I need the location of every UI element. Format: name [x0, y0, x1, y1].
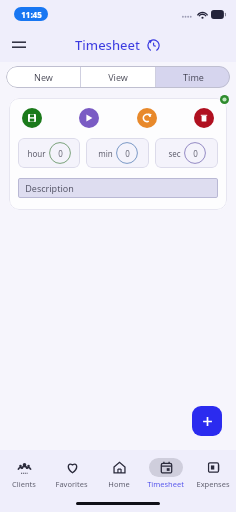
button[interactable]: Expenses	[189, 451, 236, 495]
staticText: Favorites	[55, 479, 88, 489]
button[interactable]: Description	[18, 178, 218, 198]
staticText: Description	[25, 182, 74, 194]
staticText: 0	[193, 148, 198, 159]
staticText: View	[108, 71, 128, 83]
staticText: Home	[108, 479, 130, 489]
button[interactable]: History	[145, 37, 161, 53]
staticText: Expenses	[196, 479, 230, 489]
staticText: hour	[27, 148, 46, 159]
staticText: Timesheet	[147, 479, 184, 489]
button[interactable]: Delete	[194, 108, 214, 128]
button[interactable]: Clients	[0, 451, 48, 495]
staticText: Timesheet	[75, 36, 140, 54]
staticText: 0	[58, 148, 63, 159]
button[interactable]: min	[86, 138, 149, 168]
button[interactable]: Time	[156, 66, 230, 88]
button[interactable]: sec	[155, 138, 218, 168]
button[interactable]: Start	[79, 108, 99, 128]
other: Running	[220, 95, 229, 104]
staticText: sec	[168, 148, 181, 159]
staticText: New	[34, 71, 53, 83]
button[interactable]: New	[6, 66, 80, 88]
button[interactable]: Reset	[137, 108, 157, 128]
button[interactable]: Favorites	[48, 451, 95, 495]
button[interactable]: Home	[95, 451, 142, 495]
button[interactable]: Menu	[6, 32, 32, 58]
staticText: 0	[125, 148, 130, 159]
staticText: 11:45	[21, 9, 42, 20]
button[interactable]: Timesheet	[142, 451, 189, 495]
button[interactable]: hour	[18, 138, 80, 168]
staticText: min	[98, 148, 113, 159]
button[interactable]: Save	[22, 108, 42, 128]
button[interactable]: Add	[192, 406, 222, 436]
staticText: Clients	[12, 479, 36, 489]
button[interactable]: View	[81, 66, 155, 88]
staticText: Time	[183, 71, 204, 83]
